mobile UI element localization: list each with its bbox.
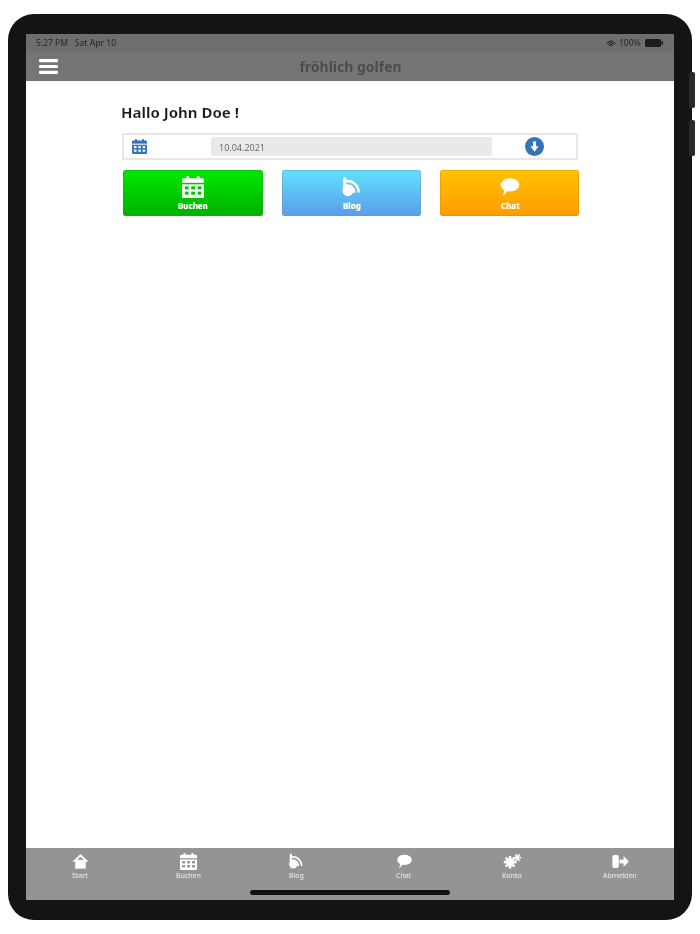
- staticText: Blog: [289, 871, 304, 881]
- button[interactable]: Konto: [458, 853, 566, 900]
- button[interactable]: Pick date: [123, 134, 211, 159]
- staticText: Buchen: [178, 200, 208, 211]
- button[interactable]: Chat: [350, 853, 458, 900]
- staticText: Konto: [502, 871, 522, 881]
- staticText: 10.04.2021: [219, 141, 266, 153]
- button[interactable]: Expand: [492, 134, 577, 159]
- button[interactable]: Blog: [242, 853, 350, 900]
- staticText: Hallo John Doe !: [121, 102, 239, 122]
- staticText: 5:27 PM Sat Apr 10: [36, 37, 117, 49]
- staticText: Chat: [396, 871, 412, 881]
- staticText: Chat: [501, 200, 520, 211]
- button[interactable]: Menu: [33, 52, 63, 81]
- button[interactable]: Buchen: [123, 170, 263, 216]
- staticText: fröhlich golfen: [299, 57, 402, 76]
- button[interactable]: Start: [26, 853, 134, 900]
- staticText: Start: [72, 871, 88, 881]
- button[interactable]: 10.04.2021: [211, 137, 492, 156]
- staticText: Blog: [343, 200, 361, 211]
- staticText: Buchen: [176, 871, 201, 881]
- button[interactable]: Abmelden: [566, 853, 674, 900]
- button[interactable]: Blog: [282, 170, 421, 216]
- button[interactable]: Buchen: [134, 853, 242, 900]
- button[interactable]: Chat: [440, 170, 579, 216]
- staticText: Abmelden: [603, 871, 637, 881]
- staticText: 100%: [619, 37, 641, 49]
